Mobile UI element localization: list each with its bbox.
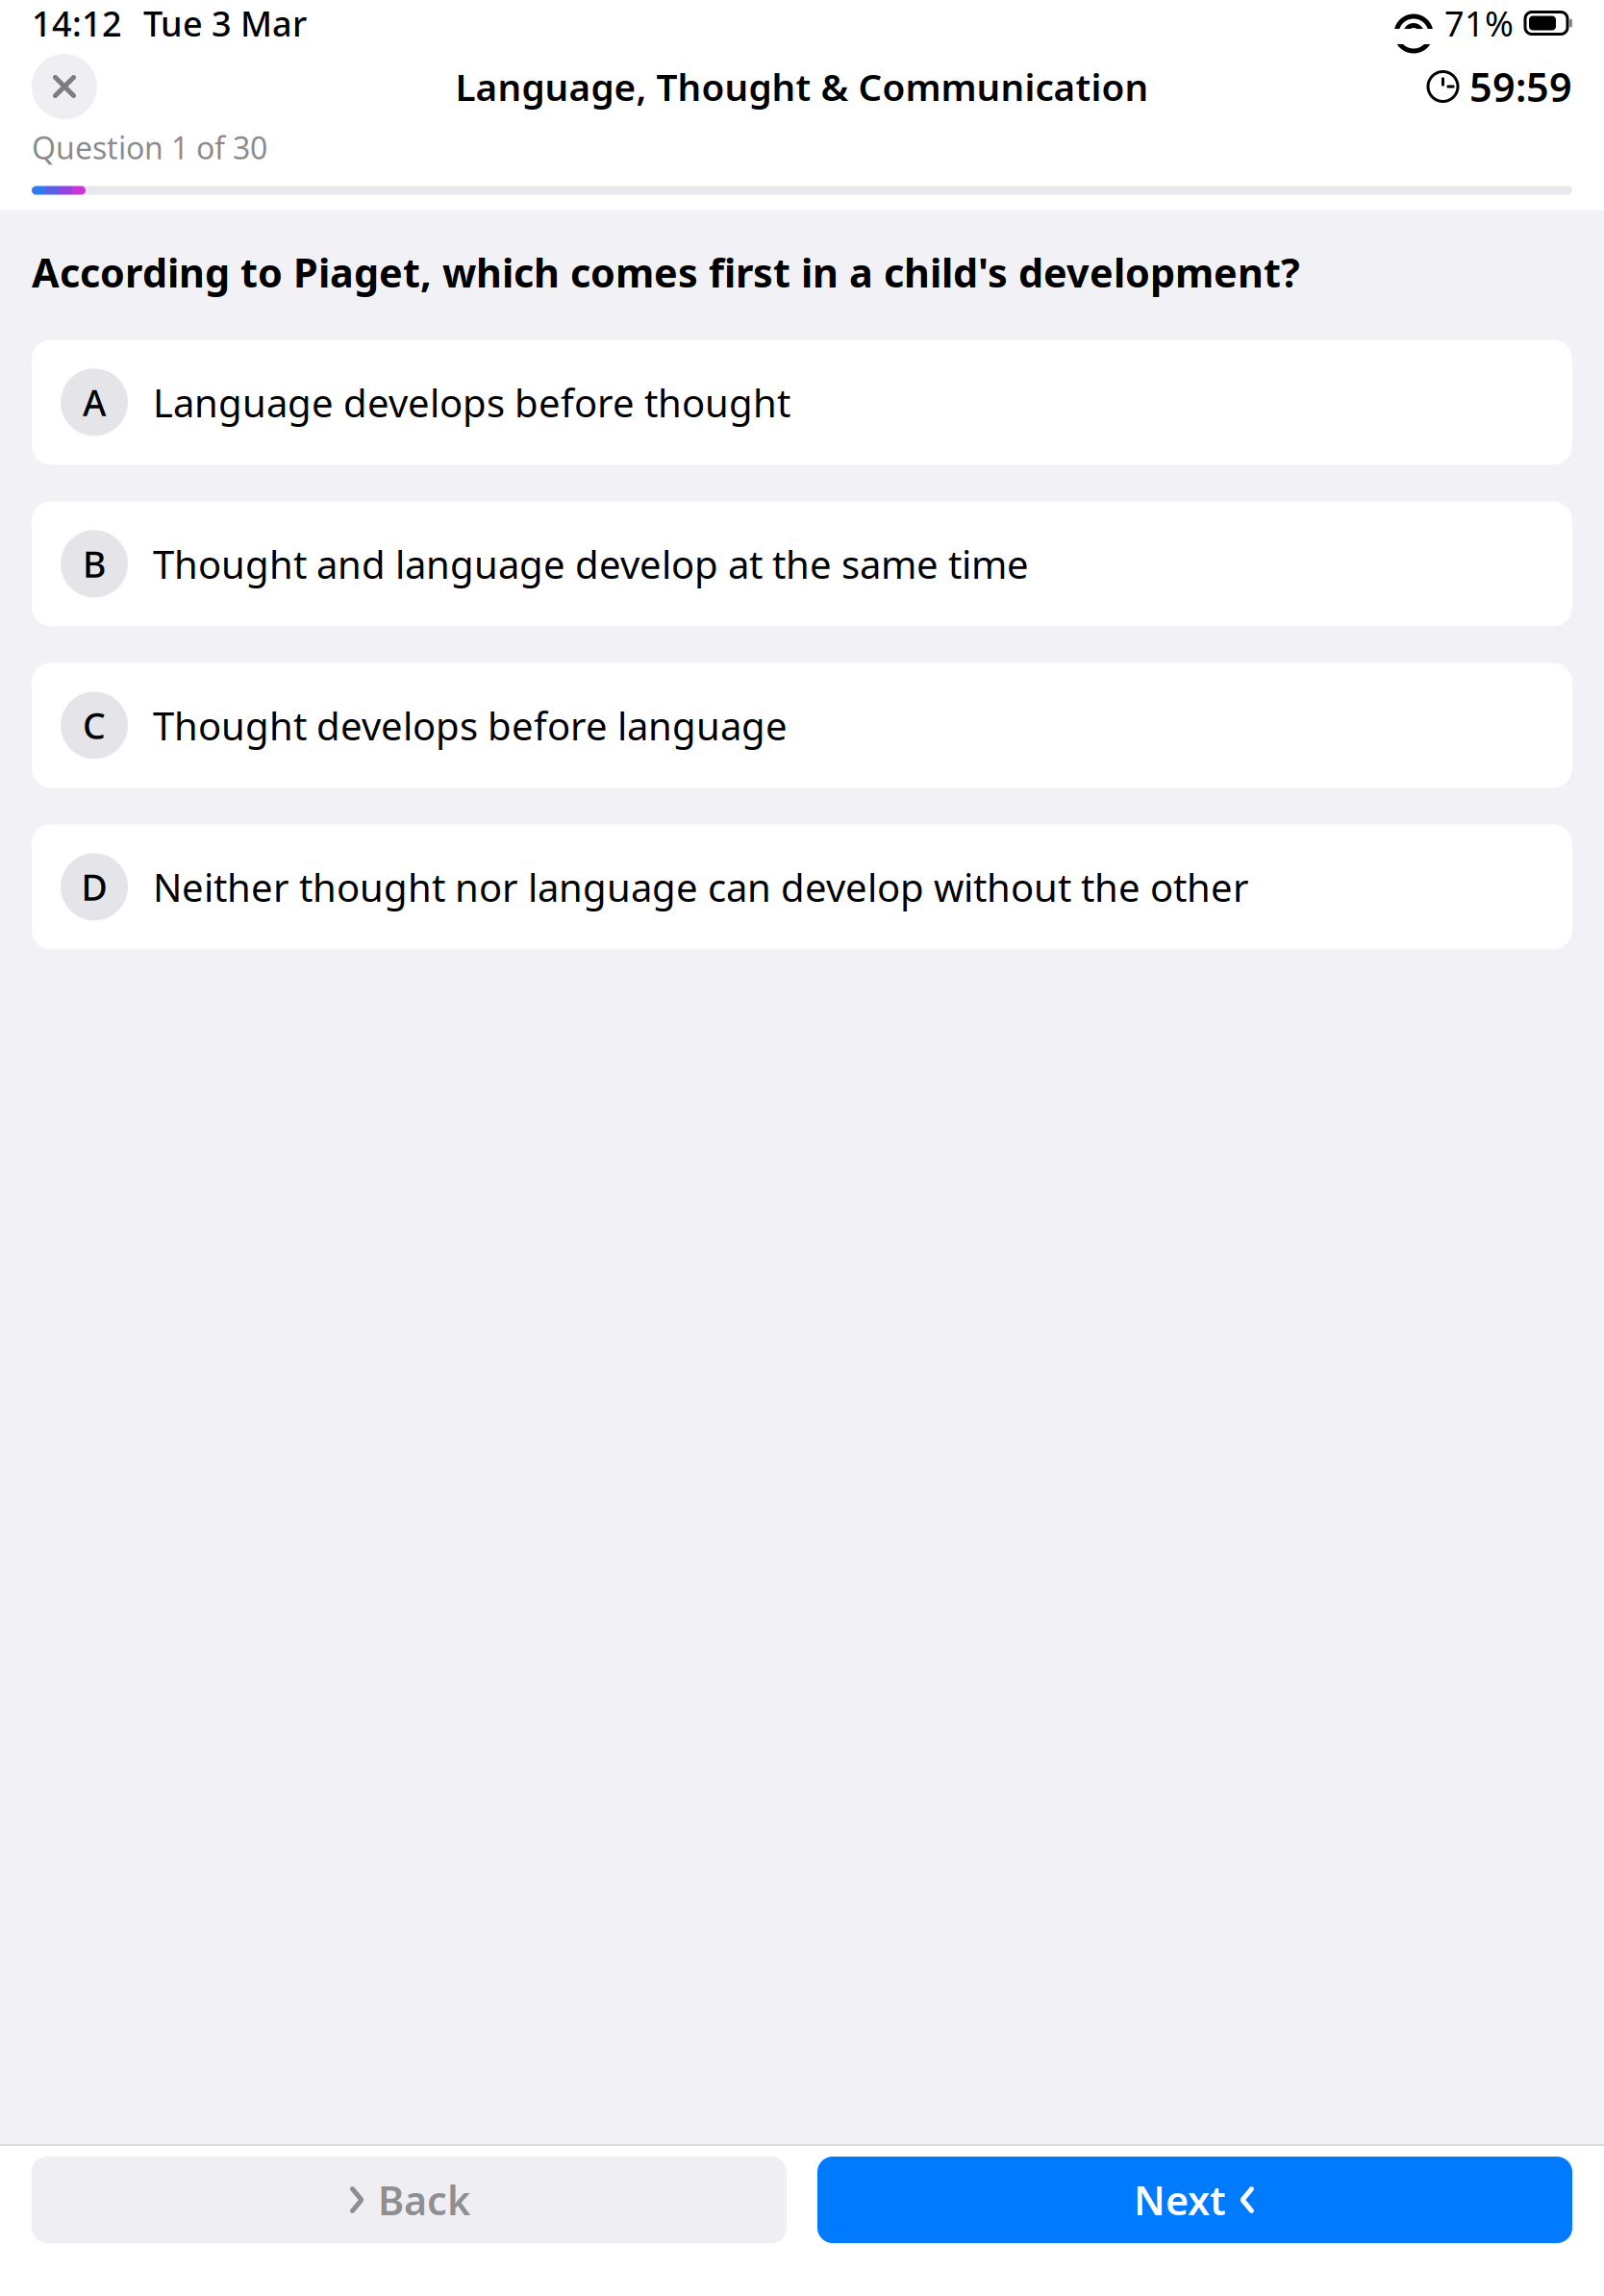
- button[interactable]: D: [32, 824, 1572, 949]
- staticText: Neither thought nor language can develop…: [153, 861, 1249, 912]
- staticText: Back: [378, 2174, 470, 2226]
- staticText: C: [83, 701, 106, 749]
- staticText: Language, Thought & Communication: [455, 62, 1149, 111]
- button[interactable]: C: [32, 663, 1572, 788]
- staticText: According to Piaget, which comes first i…: [32, 246, 1300, 298]
- staticText: B: [83, 540, 106, 588]
- staticText: D: [81, 863, 107, 911]
- staticText: Thought and language develop at the same…: [153, 538, 1029, 589]
- staticText: 59:59: [1469, 60, 1572, 113]
- staticText: Language develops before thought: [153, 377, 790, 428]
- button[interactable]: A: [32, 340, 1572, 465]
- staticText: A: [83, 378, 106, 426]
- staticText: Thought develops before language: [153, 700, 788, 751]
- button[interactable]: Next: [817, 2157, 1572, 2243]
- staticText: 71%: [1444, 0, 1514, 46]
- button[interactable]: Back: [32, 2157, 787, 2243]
- staticText: Tue 3 Mar: [143, 0, 307, 46]
- button[interactable]: Time remaining 59:59: [1427, 60, 1572, 113]
- staticText: Question 1 of 30: [32, 127, 267, 168]
- button[interactable]: B: [32, 501, 1572, 626]
- staticText: Next: [1134, 2174, 1226, 2226]
- staticText: 14:12: [32, 0, 122, 46]
- button[interactable]: Close: [32, 54, 97, 119]
